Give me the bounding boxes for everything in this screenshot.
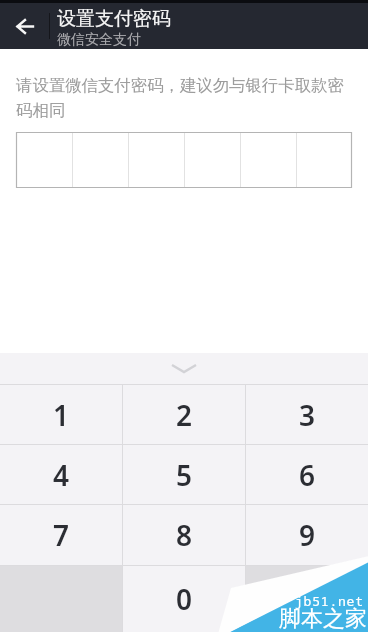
staticText: 7 [53, 516, 70, 554]
staticText: 4 [53, 456, 70, 494]
staticText: 2 [176, 396, 193, 434]
staticText: 3 [299, 396, 316, 434]
button[interactable]: 7 [0, 505, 122, 565]
button[interactable]: 4 [0, 445, 122, 504]
staticText: 8 [176, 516, 193, 554]
staticText: 6 [299, 456, 316, 494]
staticText: 9 [299, 516, 316, 554]
staticText: 设置支付密码 [57, 7, 171, 31]
button[interactable]: 0 [123, 566, 245, 632]
button[interactable]: 9 [246, 505, 368, 565]
staticText: 5 [176, 456, 193, 494]
button[interactable]: Back [0, 3, 49, 49]
staticText: 微信安全支付 [57, 31, 141, 49]
staticText: 脚本之家 [279, 605, 367, 632]
button[interactable]: 2 [123, 385, 245, 444]
staticText: 1 [53, 396, 70, 434]
button[interactable]: 8 [123, 505, 245, 565]
button[interactable]: Hide keyboard [161, 353, 207, 384]
button[interactable]: 6 [246, 445, 368, 504]
button[interactable]: 5 [123, 445, 245, 504]
staticText: 请设置微信支付密码，建议勿与银行卡取款密码相同 [16, 75, 354, 121]
button[interactable]: 3 [246, 385, 368, 444]
staticText: 0 [176, 580, 193, 618]
button[interactable]: 1 [0, 385, 122, 444]
staticText: jb51.net [295, 592, 364, 610]
button[interactable]: Delete [246, 566, 368, 632]
